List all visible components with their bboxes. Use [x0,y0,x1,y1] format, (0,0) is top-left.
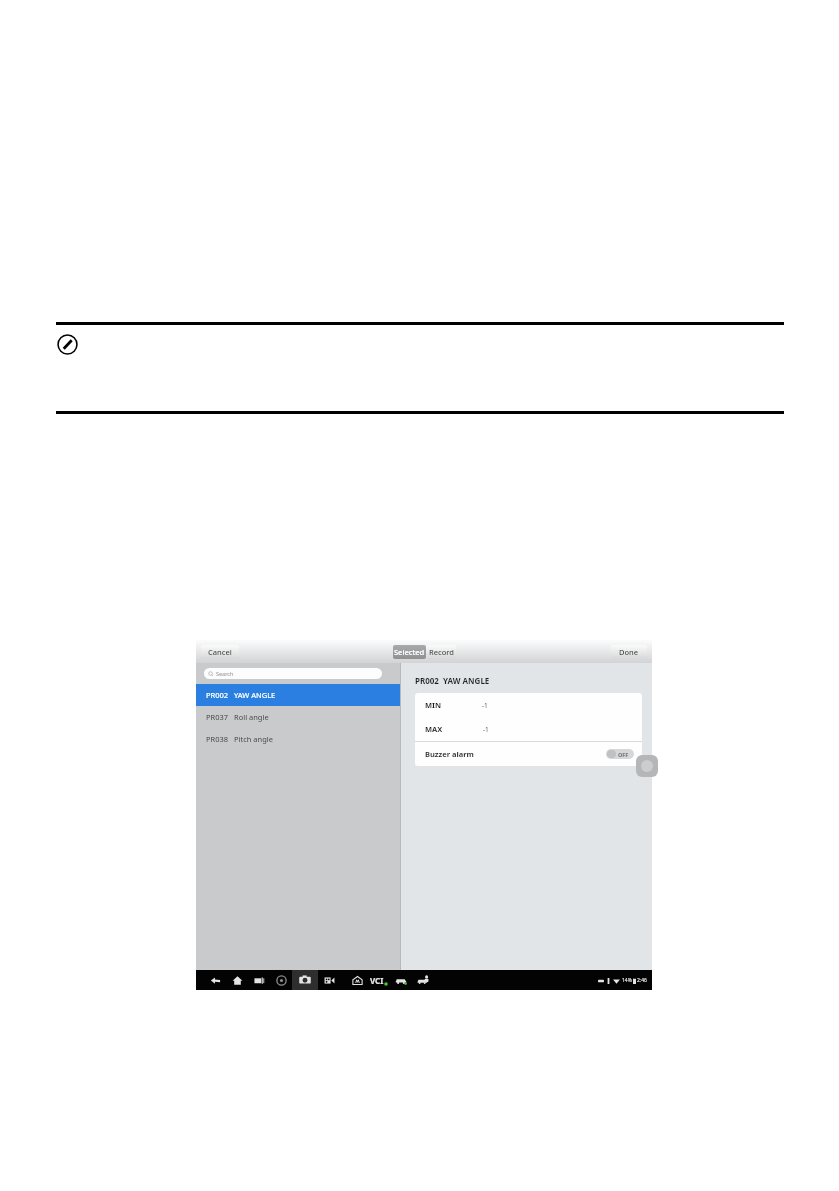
staticText: 2:46 [637,977,647,984]
button[interactable]: MIN [415,693,642,717]
staticText: Pitch angle [234,734,273,744]
button[interactable]: Camera [292,970,318,990]
button[interactable]: OFF [606,749,634,759]
staticText: 14% [622,977,632,984]
staticText: MIN [425,700,442,710]
staticText: Buzzer alarm [425,749,474,759]
staticText: Record [429,647,454,657]
button[interactable]: Floating tool [636,755,658,777]
staticText: VCI [370,975,384,986]
staticText: Cancel [208,647,232,657]
staticText: YAW ANGLE [234,690,276,700]
button[interactable]: Remote [412,970,434,990]
staticText: -1 [482,701,488,710]
button[interactable]: Record [426,645,456,659]
button[interactable]: PR002 [196,684,400,706]
button[interactable]: Screenshot [318,970,340,990]
button[interactable]: Done [611,645,647,659]
staticText: -1 [483,725,489,734]
button[interactable]: Search [204,668,382,679]
button[interactable]: Home [226,970,248,990]
staticText: PR002 [415,675,439,686]
staticText: MAX [425,724,443,734]
button[interactable]: Selected [393,645,426,659]
button[interactable]: Browser [270,970,292,990]
button[interactable]: PR038 [196,728,400,750]
staticText: Selected [394,647,425,657]
button[interactable]: Vehicle [390,970,412,990]
staticText: Search [216,670,234,677]
button[interactable]: Recents [248,970,270,990]
button[interactable]: MAX [415,717,642,741]
button[interactable]: Back [204,970,226,990]
staticText: YAW ANGLE [443,675,490,686]
staticText: Roll angle [234,712,269,722]
staticText: OFF [618,751,629,758]
staticText: PR002 [206,690,229,700]
button[interactable]: PR037 [196,706,400,728]
staticText: PR037 [206,712,229,722]
staticText: Done [619,647,639,657]
button[interactable]: Buzzer alarm [415,742,642,766]
staticText: PR038 [206,734,229,744]
button[interactable]: VCI [368,970,390,990]
button[interactable]: Autel [346,970,368,990]
button[interactable]: Cancel [201,645,239,659]
